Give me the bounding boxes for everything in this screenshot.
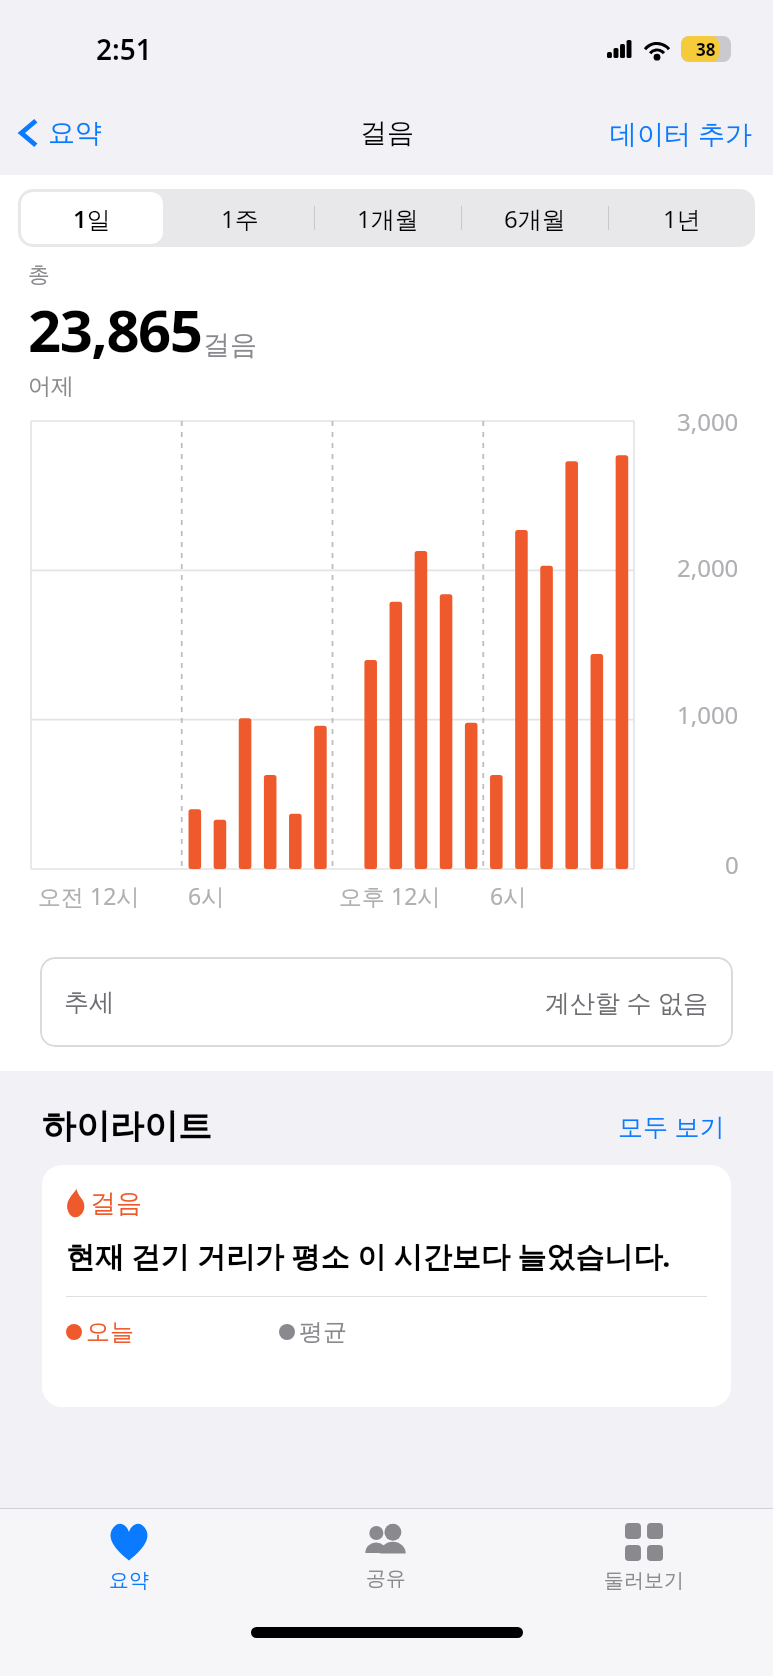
button[interactable]: 1개월 <box>317 192 458 244</box>
staticText: 걸음 <box>360 116 414 150</box>
staticText: 3,000 <box>677 405 739 438</box>
staticText: 1개월 <box>357 202 419 235</box>
button[interactable]: Sharing <box>257 1509 515 1615</box>
button[interactable]: 걸음 <box>42 1165 731 1407</box>
staticText: 어제 <box>28 372 74 401</box>
button[interactable]: 1년 <box>611 192 752 244</box>
staticText: 모두 보기 <box>618 1109 725 1143</box>
staticText: 평균 <box>299 1317 347 1347</box>
staticText: 요약 <box>48 116 102 150</box>
staticText: 1,000 <box>677 698 739 731</box>
button[interactable]: Browse <box>515 1509 773 1615</box>
button[interactable]: Summary <box>0 1509 257 1615</box>
staticText: 6시 <box>490 880 527 911</box>
staticText: 걸음 <box>90 1187 142 1220</box>
button[interactable]: 6개월 <box>464 192 605 244</box>
staticText: 걸음 <box>203 328 257 362</box>
staticText: 오늘 <box>86 1317 134 1347</box>
staticText: 2:51 <box>96 30 152 68</box>
button[interactable]: 요약 <box>0 106 112 160</box>
staticText: 하이라이트 <box>42 1105 212 1148</box>
staticText: 계산할 수 없음 <box>545 985 709 1019</box>
staticText: 현재 걷기 거리가 평소 이 시간보다 늘었습니다. <box>66 1236 671 1276</box>
staticText: 오전 12시 <box>38 880 140 911</box>
staticText: 2,000 <box>677 551 739 584</box>
button[interactable]: 추세 <box>40 957 733 1047</box>
staticText: 요약 <box>109 1568 149 1593</box>
staticText: 23,865 <box>28 290 202 369</box>
button[interactable]: 1일 <box>21 192 163 244</box>
staticText: 38 <box>696 38 716 61</box>
staticText: 데이터 추가 <box>610 115 753 152</box>
staticText: 추세 <box>64 987 114 1018</box>
staticText: 1년 <box>663 202 701 235</box>
staticText: 6개월 <box>504 202 566 235</box>
staticText: 공유 <box>366 1566 406 1591</box>
button[interactable]: 데이터 추가 <box>590 103 773 164</box>
staticText: 1일 <box>73 202 111 235</box>
button[interactable]: 모두 보기 <box>612 1103 731 1149</box>
staticText: 6시 <box>188 880 225 911</box>
staticText: 둘러보기 <box>604 1568 684 1593</box>
staticText: 오후 12시 <box>339 880 441 911</box>
staticText: 1주 <box>221 202 259 235</box>
staticText: 총 <box>28 261 50 289</box>
staticText: 0 <box>725 848 739 881</box>
button[interactable]: 1주 <box>169 192 311 244</box>
